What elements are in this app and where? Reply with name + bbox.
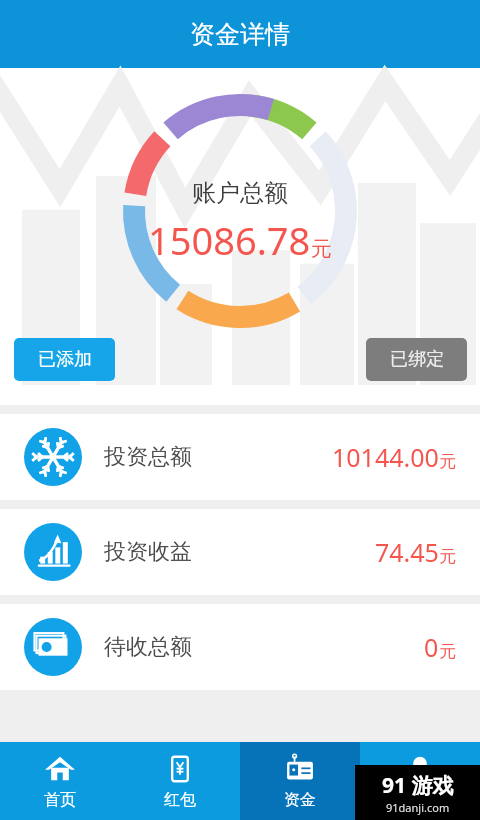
staticText: 待收总额 bbox=[104, 633, 192, 661]
button[interactable]: 我的 bbox=[360, 742, 480, 820]
staticText: 资金 bbox=[284, 790, 316, 810]
staticText: 0 bbox=[424, 630, 439, 664]
staticText: 74.45 bbox=[375, 535, 439, 569]
staticText: 红包 bbox=[164, 790, 196, 810]
staticText: 10144.00 bbox=[332, 440, 439, 474]
button[interactable]: 资金 bbox=[240, 742, 360, 820]
staticText: 已添加 bbox=[38, 348, 92, 371]
button[interactable]: 红包 bbox=[120, 742, 240, 820]
staticText: 资金详情 bbox=[190, 19, 290, 50]
staticText: 账户总额 bbox=[192, 178, 288, 208]
button[interactable]: 投资总额 bbox=[0, 414, 480, 500]
staticText: 91danji.com bbox=[386, 800, 450, 815]
staticText: 91 游戏 bbox=[382, 771, 454, 800]
staticText: 投资收益 bbox=[104, 538, 192, 566]
staticText: 投资总额 bbox=[104, 443, 192, 471]
button[interactable]: 已添加 bbox=[14, 338, 115, 381]
staticText: 已绑定 bbox=[390, 348, 444, 371]
staticText: 元 bbox=[311, 236, 332, 262]
staticText: 首页 bbox=[44, 790, 76, 810]
staticText: 元 bbox=[439, 451, 456, 472]
staticText: 我的 bbox=[404, 790, 436, 810]
button[interactable]: 首页 bbox=[0, 742, 120, 820]
button[interactable]: 待收总额 bbox=[0, 604, 480, 690]
staticText: 元 bbox=[439, 546, 456, 567]
button[interactable]: 投资收益 bbox=[0, 509, 480, 595]
button[interactable]: 已绑定 bbox=[366, 338, 467, 381]
staticText: 15086.78 bbox=[148, 214, 311, 266]
staticText: 元 bbox=[439, 641, 456, 662]
